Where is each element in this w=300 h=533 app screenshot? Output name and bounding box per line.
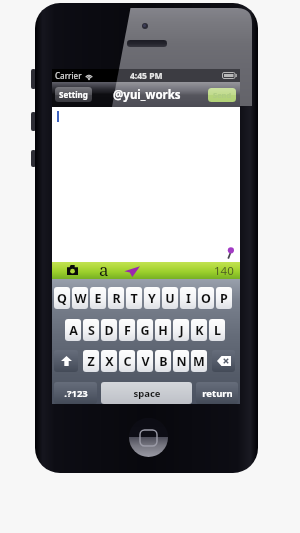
staticText: U [165,290,175,307]
staticText: N [176,353,187,370]
button[interactable]: Backspace [212,350,235,372]
staticText: 4:45 PM [130,70,163,82]
staticText: Z [87,353,95,370]
button[interactable]: O [198,287,214,309]
button[interactable]: L [209,319,225,341]
button[interactable]: Send [208,88,236,102]
staticText: return [202,387,233,400]
button[interactable]: a [96,255,111,279]
button[interactable]: Z [83,350,99,372]
staticText: 140 [214,263,234,279]
staticText: .?123 [64,387,88,400]
staticText: A [69,322,78,339]
staticText: M [193,353,205,370]
button[interactable]: return [196,382,238,404]
staticText: H [158,322,168,339]
staticText: Setting [59,89,88,100]
button[interactable]: Shift [54,350,78,372]
button[interactable]: S [83,319,99,341]
button[interactable]: F [119,319,135,341]
button[interactable]: H [155,319,171,341]
staticText: Y [148,290,156,307]
button[interactable]: B [155,350,171,372]
staticText: Carrier [55,70,82,81]
staticText: S [88,322,95,339]
button[interactable]: Y [144,287,160,309]
staticText: O [201,290,211,307]
button[interactable]: C [119,350,135,372]
staticText: space [133,387,161,400]
staticText: P [220,290,228,307]
button[interactable]: E [90,287,106,309]
button[interactable]: W [72,287,88,309]
staticText: B [159,353,168,370]
staticText: D [104,322,114,339]
staticText: J [179,322,184,339]
button[interactable]: I [180,287,196,309]
staticText: L [214,322,221,339]
button[interactable]: N [173,350,189,372]
staticText: Send [213,90,232,100]
button[interactable]: K [191,319,207,341]
button[interactable]: Setting [55,87,92,102]
staticText: X [105,353,114,370]
button[interactable]: P [216,287,232,309]
staticText: R [112,290,121,307]
staticText: a [99,258,109,281]
staticText: C [123,353,132,370]
button[interactable]: U [162,287,178,309]
button[interactable]: A [65,319,81,341]
staticText: T [130,290,138,307]
staticText: K [195,322,204,339]
staticText: F [124,322,131,339]
button[interactable]: space [101,382,192,404]
button[interactable]: R [108,287,124,309]
staticText: I [186,290,191,307]
staticText: E [94,290,102,307]
button[interactable]: J [173,319,189,341]
button[interactable]: V [137,350,153,372]
button[interactable]: Location [124,265,140,277]
button[interactable]: X [101,350,117,372]
button[interactable]: Q [54,287,70,309]
staticText: @yui_works [113,87,181,103]
staticText: Q [57,290,67,307]
button[interactable]: .?123 [54,382,97,404]
button[interactable]: G [137,319,153,341]
staticText: V [141,353,150,370]
button[interactable]: Add photo [67,265,78,275]
button[interactable]: D [101,319,117,341]
button[interactable]: M [191,350,207,372]
staticText: W [74,290,87,307]
staticText: G [140,322,150,339]
button[interactable]: T [126,287,142,309]
